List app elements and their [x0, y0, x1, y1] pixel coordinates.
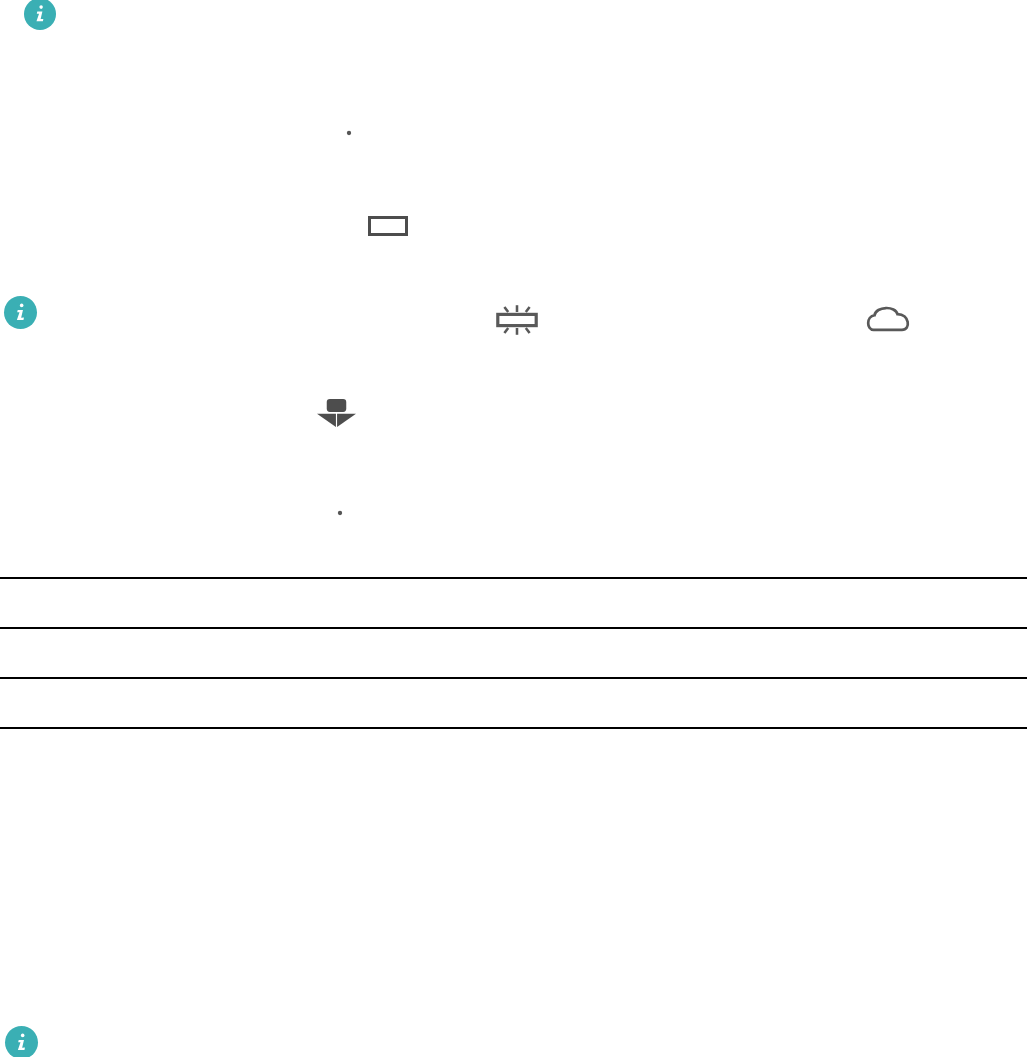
- button[interactable]: Information: [24, 0, 56, 30]
- button[interactable]: Brightness: [497, 303, 537, 337]
- button[interactable]: Information: [5, 1026, 38, 1057]
- button[interactable]: Cloud: [866, 305, 911, 332]
- button[interactable]: Download: [317, 399, 356, 427]
- button[interactable]: Information: [4, 296, 37, 329]
